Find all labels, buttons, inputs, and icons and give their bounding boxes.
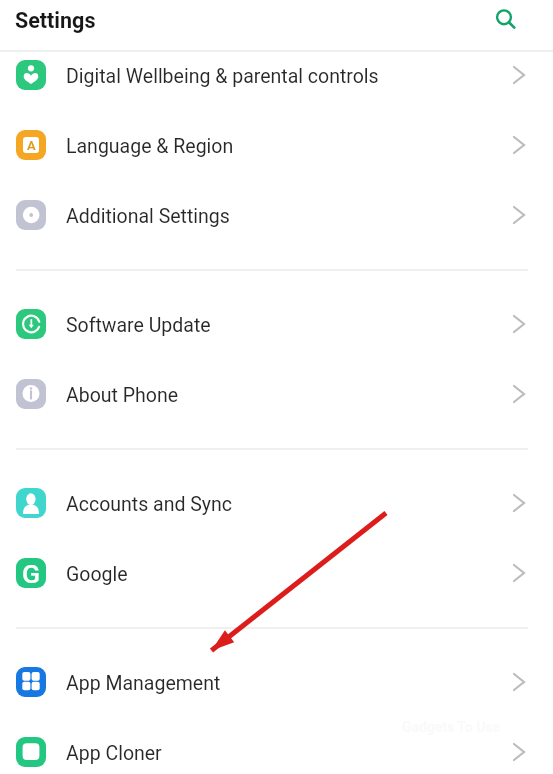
staticText: Digital Wellbeing & parental controls: [66, 65, 379, 88]
staticText: App Management: [66, 672, 221, 695]
staticText: A: [27, 138, 36, 153]
staticText: Software Update: [66, 314, 211, 337]
button[interactable]: Accounts and Sync: [0, 468, 553, 538]
button[interactable]: About Phone: [0, 359, 553, 429]
staticText: Settings: [15, 8, 96, 33]
button[interactable]: App Management: [0, 647, 553, 717]
staticText: G: [22, 558, 41, 588]
button[interactable]: Software Update: [0, 289, 553, 359]
staticText: Accounts and Sync: [66, 493, 233, 516]
staticText: App Cloner: [66, 742, 162, 765]
button[interactable]: Search: [489, 2, 523, 36]
button[interactable]: Additional Settings: [0, 180, 553, 250]
button[interactable]: Digital Wellbeing & parental controls: [0, 40, 553, 110]
staticText: Language & Region: [66, 135, 234, 158]
button[interactable]: A: [0, 110, 553, 180]
button[interactable]: G: [0, 538, 553, 608]
staticText: About Phone: [66, 384, 179, 407]
button[interactable]: App Cloner: [0, 717, 553, 774]
staticText: Google: [66, 563, 128, 586]
staticText: Additional Settings: [66, 205, 230, 228]
